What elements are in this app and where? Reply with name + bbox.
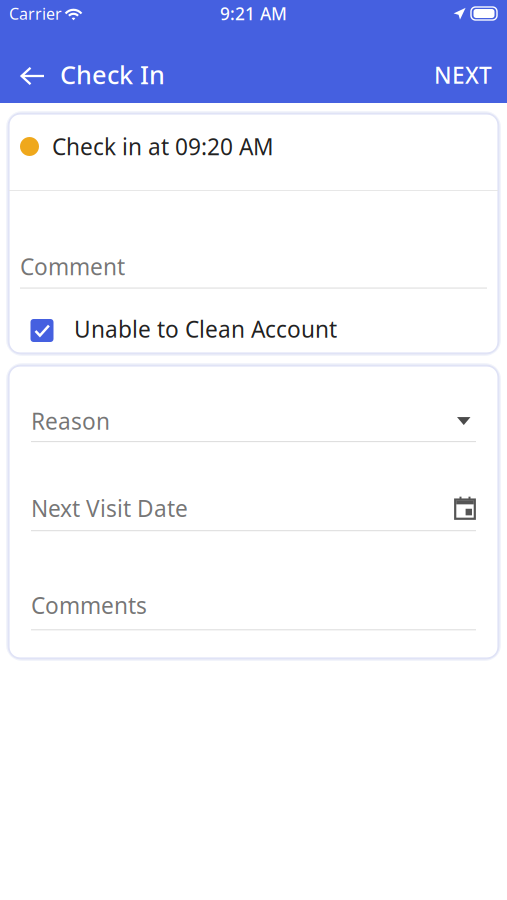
staticText: Carrier [9,3,62,24]
staticText: Next Visit Date [31,493,188,523]
staticText: Check In [60,58,165,91]
staticText: Reason [31,406,110,436]
button[interactable]: NEXT [418,30,507,100]
staticText: Check in at 09:20 AM [52,131,274,161]
staticText: NEXT [434,60,492,90]
button[interactable]: Back [0,36,60,94]
button[interactable]: Unable to Clean Account [9,287,62,352]
staticText: Comment [20,251,125,281]
staticText: Unable to Clean Account [74,314,337,344]
staticText: Comments [31,590,147,620]
staticText: 9:21 AM [220,2,287,25]
